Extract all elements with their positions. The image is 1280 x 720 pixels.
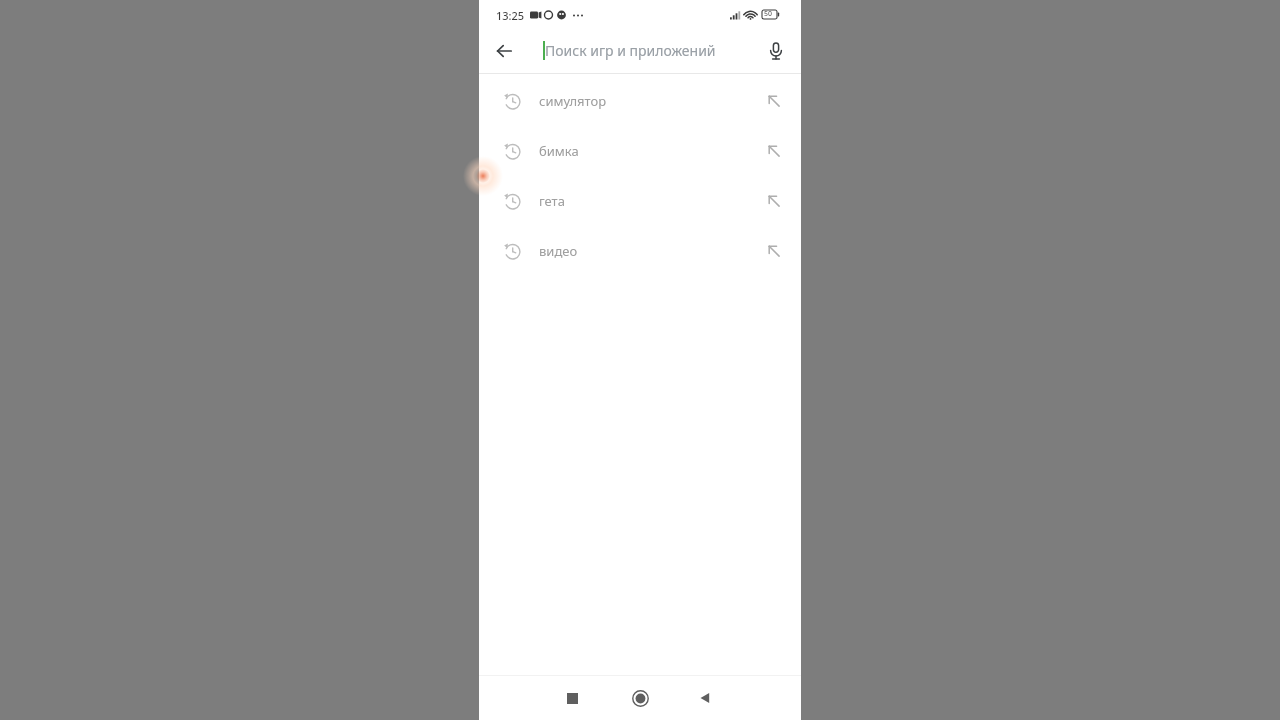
button[interactable]: Insert suggestion [757, 134, 791, 168]
button[interactable]: бимка [479, 126, 801, 176]
staticText: гета [539, 192, 757, 210]
button[interactable]: Home [625, 683, 655, 713]
button[interactable]: Insert suggestion [757, 234, 791, 268]
button[interactable]: гета [479, 176, 801, 226]
staticText: 50 [764, 9, 773, 19]
button[interactable]: симулятор [479, 76, 801, 126]
button[interactable]: Insert suggestion [757, 84, 791, 118]
staticText: 13:25 [496, 8, 525, 23]
button[interactable]: Insert suggestion [757, 184, 791, 218]
staticText: симулятор [539, 92, 757, 110]
staticText: бимка [539, 142, 757, 160]
staticText: Поиск игр и приложений [545, 41, 716, 60]
button[interactable]: Voice search [760, 35, 792, 67]
button[interactable]: Recent apps [557, 683, 587, 713]
staticText: видео [539, 242, 757, 260]
button[interactable]: видео [479, 226, 801, 276]
button[interactable]: Back [690, 683, 720, 713]
button[interactable]: Back [488, 35, 520, 67]
